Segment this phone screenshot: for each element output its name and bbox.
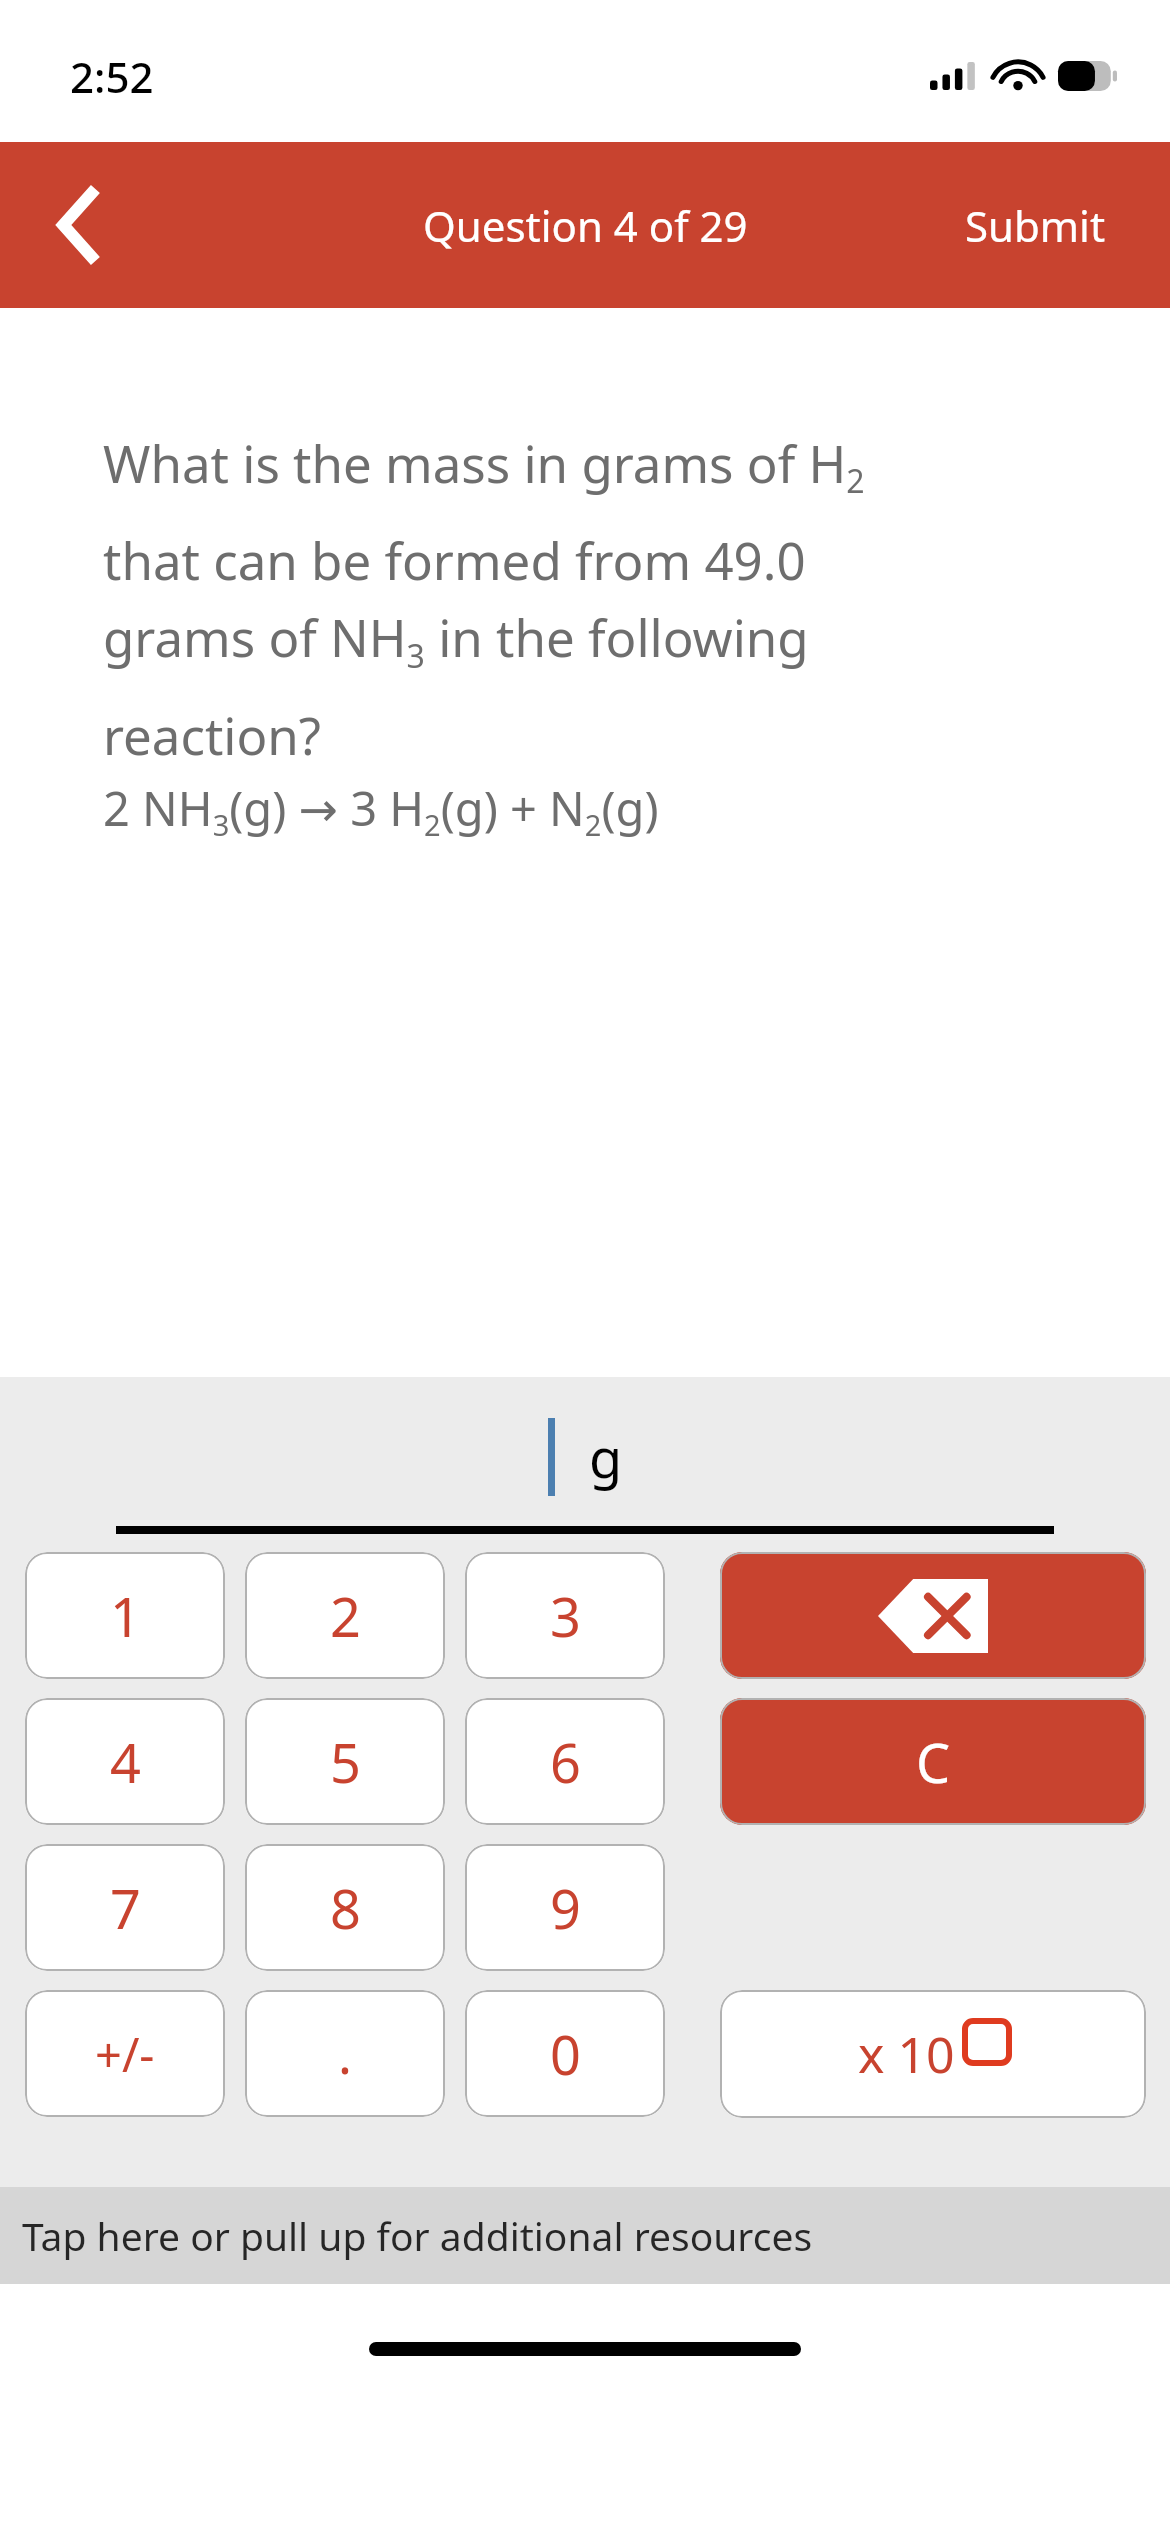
staticText: 7 — [110, 1871, 141, 1945]
button[interactable]: 1 — [25, 1552, 225, 1679]
button[interactable]: 3 — [465, 1552, 665, 1679]
staticText: C — [916, 1725, 951, 1799]
button[interactable]: 9 — [465, 1844, 665, 1971]
staticText: +/- — [95, 2022, 155, 2086]
staticText: What is the mass in grams of H2 that can… — [103, 428, 865, 770]
button[interactable]: C — [720, 1698, 1146, 1825]
button[interactable]: Back — [0, 142, 160, 308]
staticText: Tap here or pull up for additional resou… — [22, 2209, 813, 2262]
button[interactable]: 4 — [25, 1698, 225, 1825]
staticText: 2 — [330, 1579, 361, 1653]
button[interactable]: 8 — [245, 1844, 445, 1971]
staticText: 4 — [110, 1725, 141, 1799]
staticText: x 10 — [858, 2020, 955, 2088]
button[interactable]: Tap here or pull up for additional resou… — [0, 2187, 1170, 2284]
staticText: . — [338, 2018, 352, 2089]
button[interactable]: . — [245, 1990, 445, 2117]
staticText: 1 — [110, 1579, 141, 1653]
button[interactable]: Backspace — [720, 1552, 1146, 1679]
button[interactable]: 0 — [465, 1990, 665, 2117]
button[interactable]: 2 — [245, 1552, 445, 1679]
staticText: 3 — [550, 1579, 581, 1653]
button[interactable]: Submit — [901, 142, 1170, 308]
staticText: 9 — [550, 1871, 581, 1945]
staticText: 8 — [330, 1871, 361, 1945]
staticText: Submit — [965, 197, 1106, 254]
staticText: 5 — [330, 1725, 361, 1799]
staticText: 2 NH3(g) → 3 H2(g) + N2(g) — [103, 776, 659, 845]
staticText: Question 4 of 29 — [423, 197, 748, 254]
button[interactable]: 7 — [25, 1844, 225, 1971]
staticText: 2:52 — [70, 48, 154, 105]
button[interactable]: 5 — [245, 1698, 445, 1825]
button[interactable]: 6 — [465, 1698, 665, 1825]
button[interactable]: +/- — [25, 1990, 225, 2117]
button[interactable]: x 10 — [720, 1990, 1146, 2118]
staticText: g — [589, 1420, 623, 1494]
staticText: 6 — [550, 1725, 581, 1799]
staticText: 0 — [550, 2017, 581, 2091]
